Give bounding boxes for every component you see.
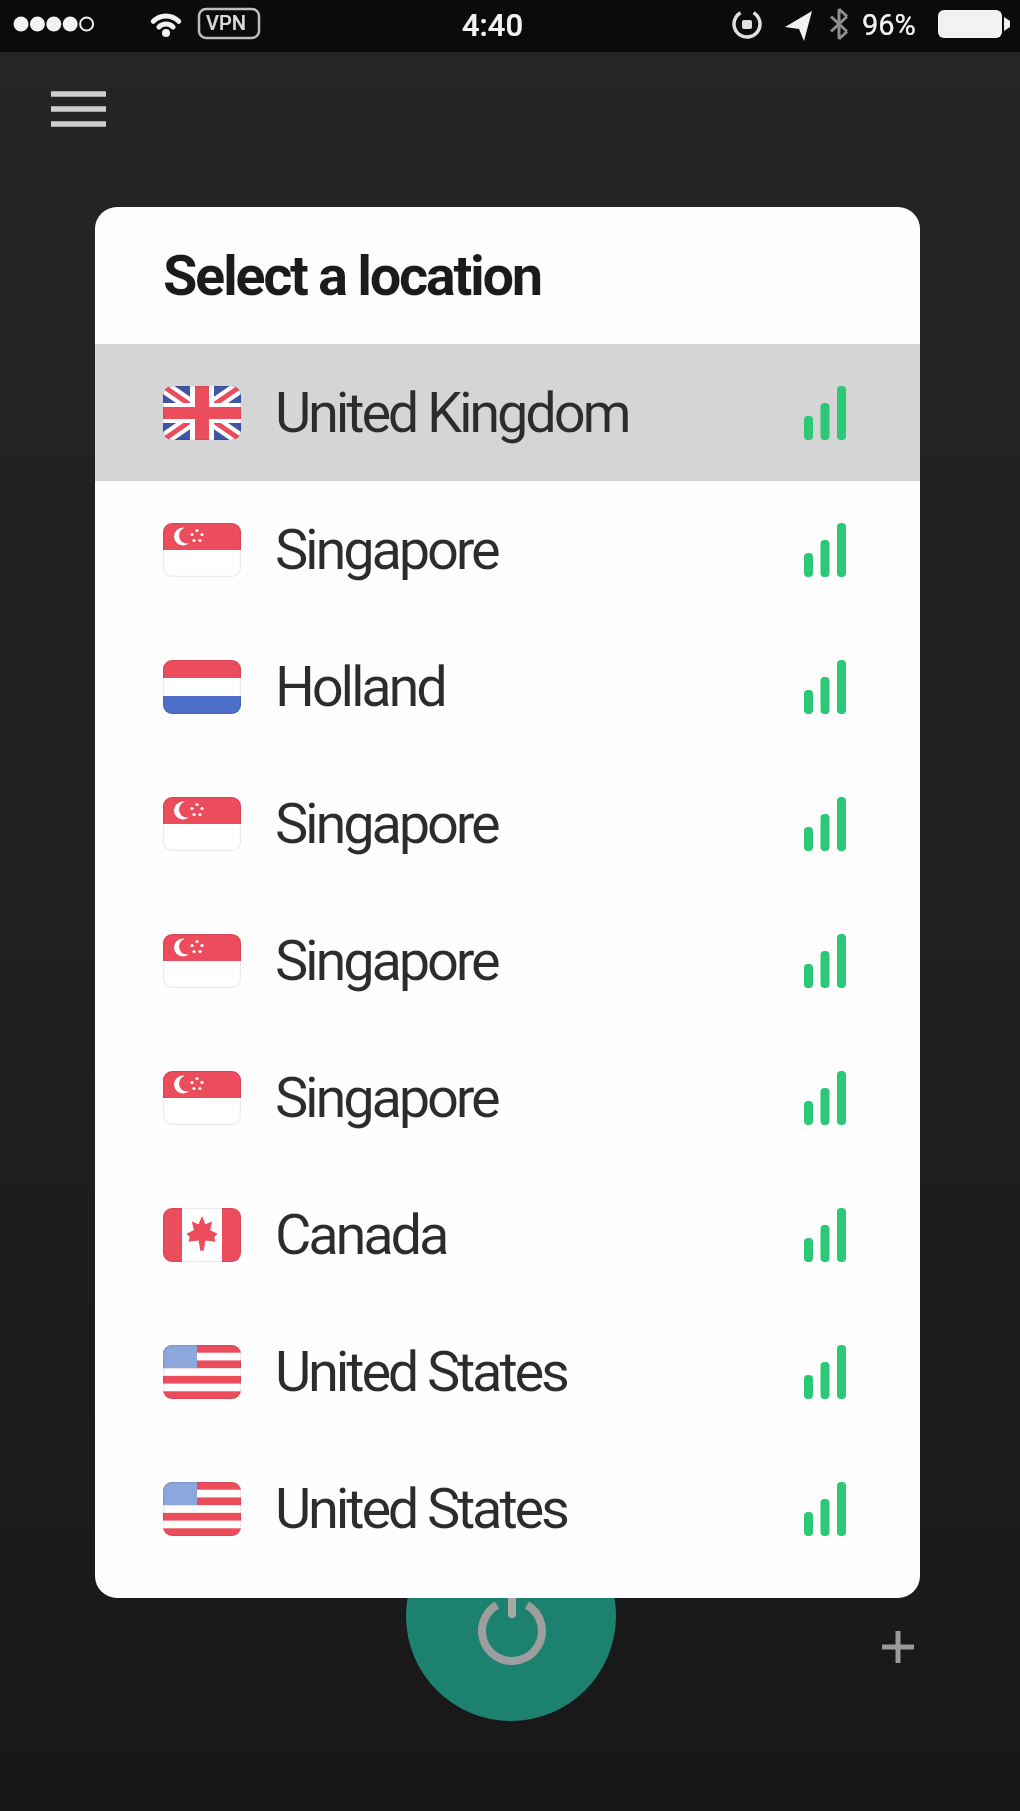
button[interactable]: Singapore	[95, 1029, 920, 1166]
staticText: United States	[275, 1476, 567, 1542]
button[interactable]: United States	[95, 1303, 920, 1440]
button[interactable]	[406, 1511, 616, 1721]
button[interactable]: United Kingdom	[95, 344, 920, 481]
staticText: Holland	[275, 654, 445, 720]
button[interactable]: Singapore	[95, 892, 920, 1029]
staticText: Singapore	[275, 1065, 498, 1131]
button[interactable]: Canada	[95, 1166, 920, 1303]
staticText: Canada	[275, 1202, 447, 1268]
button[interactable]: United States	[95, 1440, 920, 1577]
staticText: Singapore	[275, 791, 498, 857]
staticText: Select a location	[163, 243, 541, 309]
button[interactable]	[38, 78, 118, 140]
staticText: 4:40	[462, 7, 524, 43]
staticText: Singapore	[275, 517, 498, 583]
button[interactable]: Singapore	[95, 481, 920, 618]
staticText: United Kingdom	[275, 380, 629, 446]
button[interactable]	[874, 1623, 922, 1671]
staticText: 96%	[862, 8, 916, 42]
staticText: Singapore	[275, 928, 498, 994]
button[interactable]: Holland	[95, 618, 920, 755]
staticText: VPN	[206, 11, 246, 34]
button[interactable]: Singapore	[95, 755, 920, 892]
staticText: United States	[275, 1339, 567, 1405]
